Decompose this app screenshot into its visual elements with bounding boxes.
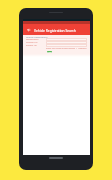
staticText: Vehicle Registration xyxy=(26,36,48,39)
staticText: Chassis No xyxy=(26,41,38,44)
staticText: Registration xyxy=(26,38,39,41)
button[interactable] xyxy=(46,41,87,44)
staticText: Enter the code shown above | Refresh xyxy=(46,47,87,50)
button[interactable] xyxy=(46,38,87,41)
staticText: Vehicle Registration Search xyxy=(34,28,76,32)
staticText: Search xyxy=(47,51,52,53)
staticText: Engine No xyxy=(26,44,37,47)
button[interactable]: Back xyxy=(23,24,34,35)
button[interactable]: Search xyxy=(47,51,52,53)
button[interactable] xyxy=(46,44,87,47)
